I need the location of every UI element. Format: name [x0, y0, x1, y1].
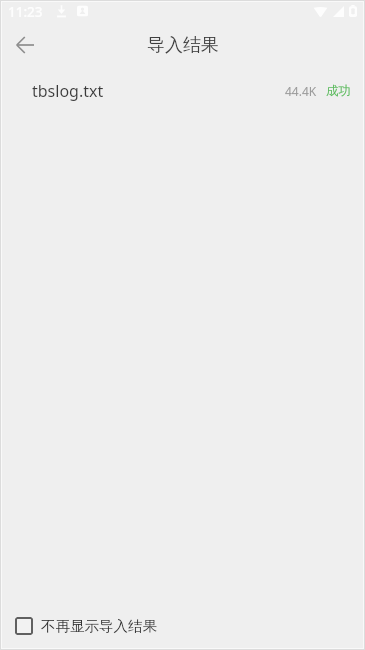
button[interactable]: tbslog.txt: [0, 67, 365, 114]
staticText: tbslog.txt: [32, 80, 104, 102]
button[interactable]: 不再显示导入结果: [0, 606, 365, 650]
staticText: 11:23: [8, 3, 43, 21]
staticText: 成功: [326, 83, 351, 99]
staticText: 导入结果: [147, 34, 219, 57]
button[interactable]: Back: [0, 22, 49, 67]
staticText: 不再显示导入结果: [41, 617, 157, 635]
staticText: 44.4K: [285, 83, 317, 99]
